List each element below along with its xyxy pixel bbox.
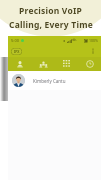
button[interactable]: App logo bbox=[11, 48, 22, 55]
staticText: Calling, Every Time bbox=[9, 19, 93, 31]
staticText: IPX bbox=[14, 50, 20, 54]
staticText: 5:00 bbox=[11, 38, 19, 43]
button[interactable]: Kimberly Cantu bbox=[8, 71, 101, 90]
button[interactable]: Dialpad bbox=[55, 57, 78, 71]
button[interactable]: Recents bbox=[78, 57, 101, 71]
button[interactable]: More options bbox=[88, 46, 98, 56]
staticText: 100% bbox=[89, 38, 98, 43]
button[interactable]: Account bbox=[8, 57, 32, 71]
button[interactable]: Contacts bbox=[32, 57, 55, 71]
staticText: Precision VoIP bbox=[19, 5, 82, 17]
staticText: Kimberly Cantu bbox=[33, 78, 66, 84]
